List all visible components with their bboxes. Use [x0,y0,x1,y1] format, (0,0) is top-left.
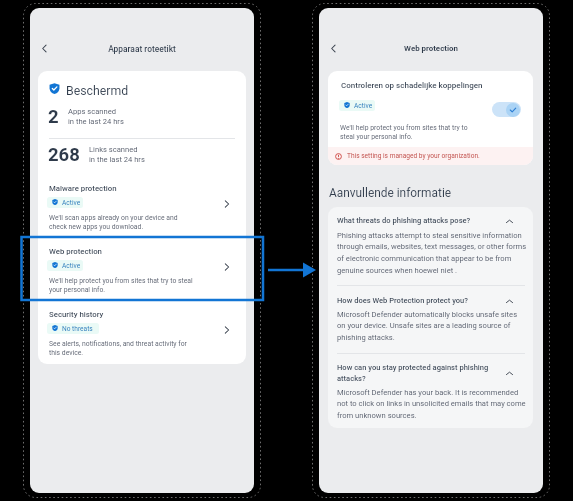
staticText: Active [354,102,373,110]
staticText: Apparaat roteetikt [30,44,254,54]
staticText: See alerts, notifications, and threat ac… [49,340,187,357]
staticText: Web protection [319,44,543,53]
staticText: Microsoft Defender automatically blocks … [337,310,527,342]
staticText: How does Web Protection protect you? [337,296,494,305]
staticText: Aanvullende informatie [329,186,452,200]
staticText: Security history [49,310,104,319]
staticText: Active [62,199,81,207]
button[interactable]: Toggle web protection [492,102,521,117]
button[interactable]: Security history [38,303,246,364]
button[interactable]: Malware protection [38,177,246,240]
staticText: Apps scanned in the last 24 hrs [68,107,124,126]
staticText: We'll help protect you from sites that t… [340,124,468,141]
staticText: This setting is managed by your organiza… [347,152,480,160]
staticText: We'll help protect you from sites that t… [49,277,193,294]
staticText: Controleren op schadelijke koppelingen [341,81,483,90]
button[interactable]: Back [34,38,54,58]
staticText: Active [62,262,81,270]
button[interactable]: Web protection [38,240,246,303]
staticText: We'll scan apps already on your device a… [49,214,178,231]
button[interactable]: What threats do phishing attacks pose? [328,207,533,286]
button[interactable]: Back [323,38,343,58]
staticText: Phishing attacks attempt to steal sensit… [337,231,527,275]
staticText: 268 [48,144,80,166]
staticText: No threats [62,325,93,333]
staticText: What threats do phishing attacks pose? [337,216,494,225]
staticText: Links scanned in the last 24 hrs [89,145,145,164]
staticText: Malware protection [49,184,117,193]
staticText: Web protection [49,247,102,256]
staticText: 2 [48,106,59,128]
staticText: How can you stay protected against phish… [337,363,494,383]
button[interactable]: How does Web Protection protect you? [328,286,533,354]
button[interactable]: How can you stay protected against phish… [328,354,533,428]
staticText: Microsoft Defender has your back. It is … [337,388,527,420]
staticText: Beschermd [66,84,129,98]
